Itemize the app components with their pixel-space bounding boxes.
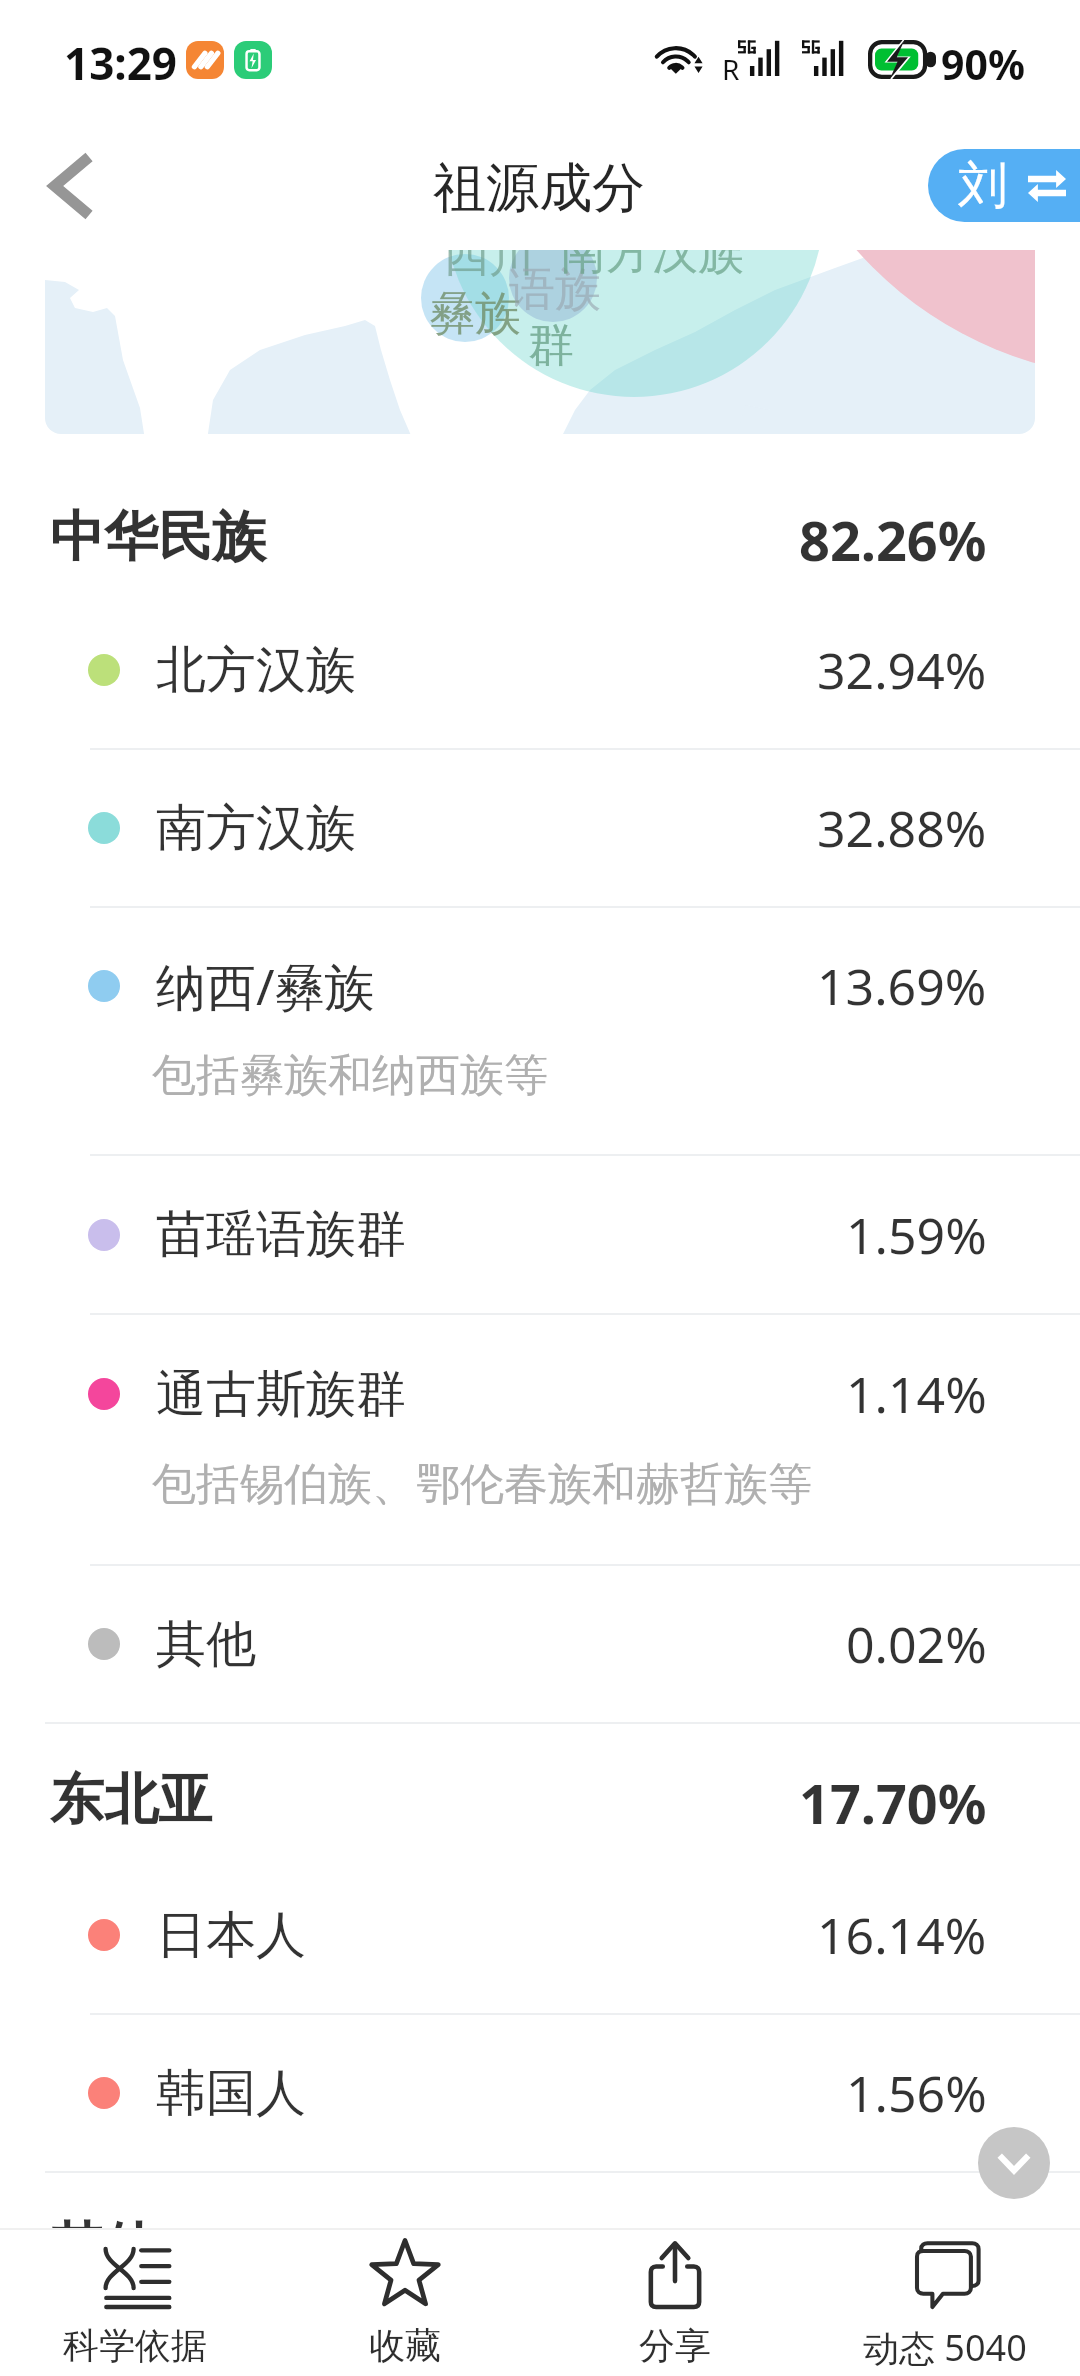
button[interactable]: Scroll down	[978, 2127, 1050, 2199]
staticText: 刘	[958, 154, 1008, 217]
staticText: 祖源成分	[433, 155, 645, 222]
staticText: 1.59%	[846, 1201, 987, 1269]
staticText: 四川	[443, 250, 535, 285]
button[interactable]: 动态 5040	[810, 2230, 1080, 2376]
staticText: 0.02%	[846, 1610, 987, 1678]
staticText: 其他	[156, 1613, 256, 1676]
staticText: 32.94%	[817, 636, 987, 704]
staticText: 南方汉族	[560, 250, 744, 282]
staticText: 1.14%	[846, 1360, 987, 1428]
staticText: 分享	[639, 2323, 711, 2368]
staticText: 动态 5040	[863, 2323, 1027, 2372]
staticText: 13.69%	[817, 952, 987, 1020]
staticText: 韩国人	[156, 2062, 306, 2125]
staticText: 包括彝族和纳西族等	[152, 1048, 548, 1103]
staticText: 13:29	[64, 33, 178, 93]
staticText: 90%	[941, 36, 1025, 92]
button[interactable]: 南方汉族	[0, 750, 1080, 906]
button[interactable]: 纳西/彝族	[0, 908, 1080, 1154]
button[interactable]: 其他	[0, 1566, 1080, 1722]
button[interactable]: Switch profile	[928, 149, 1080, 222]
button[interactable]: 收藏	[270, 2230, 540, 2376]
staticText: 语族	[509, 261, 601, 319]
staticText: 32.88%	[817, 794, 987, 862]
button[interactable]: 日本人	[0, 1857, 1080, 2013]
staticText: 纳西/彝族	[156, 952, 375, 1020]
staticText: 南方汉族	[156, 797, 356, 860]
button[interactable]: 中华民族	[0, 436, 1080, 592]
staticText: 17.70%	[799, 1766, 987, 1840]
staticText: 1.56%	[846, 2059, 987, 2127]
staticText: 通古斯族群	[156, 1363, 406, 1426]
staticText: 0.04%	[830, 2214, 987, 2288]
button[interactable]: 其他	[0, 2173, 1080, 2329]
button[interactable]: 通古斯族群	[0, 1315, 1080, 1564]
staticText: 16.14%	[817, 1901, 987, 1969]
button[interactable]: 北方汉族	[0, 592, 1080, 748]
button[interactable]: 东北亚	[0, 1724, 1080, 1857]
staticText: 东北亚	[50, 1766, 212, 1834]
staticText: 彝族	[429, 285, 521, 343]
button[interactable]: 分享	[540, 2230, 810, 2376]
staticText: 苗瑶语族群	[156, 1203, 406, 1266]
button[interactable]: Back	[24, 141, 114, 231]
staticText: 日本人	[156, 1904, 306, 1967]
staticText: R	[722, 50, 740, 88]
button[interactable]: 科学依据	[0, 2230, 270, 2376]
staticText: 包括锡伯族、鄂伦春族和赫哲族等	[152, 1457, 812, 1512]
button[interactable]: 韩国人	[0, 2015, 1080, 2171]
staticText: 群	[528, 317, 574, 375]
staticText: 北方汉族	[156, 639, 356, 702]
staticText: 中华民族	[50, 503, 266, 571]
staticText: 其他	[50, 2214, 158, 2282]
staticText: 收藏	[369, 2323, 441, 2368]
staticText: 科学依据	[63, 2323, 207, 2368]
staticText: 82.26%	[799, 503, 987, 577]
button[interactable]: 苗瑶语族群	[0, 1156, 1080, 1313]
